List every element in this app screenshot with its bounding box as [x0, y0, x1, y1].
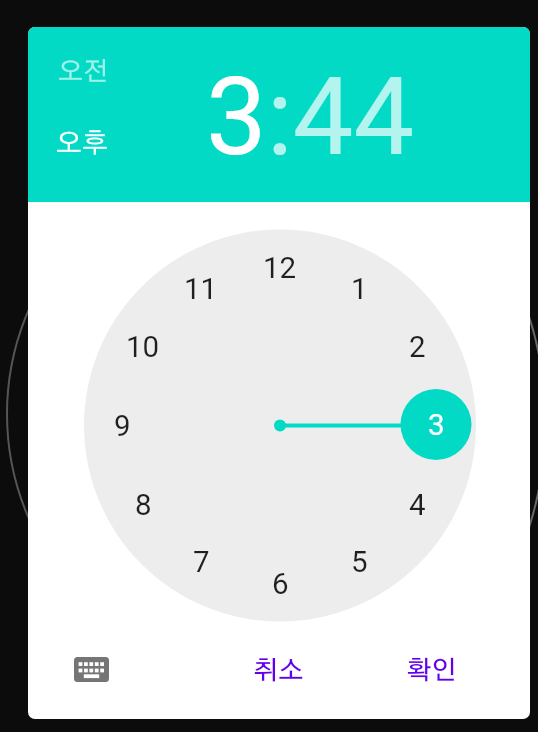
staticText: 1	[351, 272, 368, 307]
staticText: 5	[351, 545, 368, 580]
staticText: 3:44	[206, 54, 415, 181]
staticText: 오후	[56, 130, 108, 157]
staticText: 10	[126, 330, 160, 365]
staticText: 8	[135, 488, 152, 523]
staticText: 4	[409, 488, 426, 523]
staticText: 확인	[406, 658, 457, 684]
staticText: 7	[193, 545, 210, 580]
staticText: 3	[428, 408, 445, 443]
staticText: 9	[114, 409, 131, 444]
staticText: 11	[184, 272, 218, 307]
staticText: 취소	[253, 658, 304, 684]
staticText: 오전	[58, 59, 108, 85]
staticText: 6	[272, 567, 289, 602]
staticText: 2	[409, 330, 426, 365]
staticText: 12	[263, 251, 297, 286]
